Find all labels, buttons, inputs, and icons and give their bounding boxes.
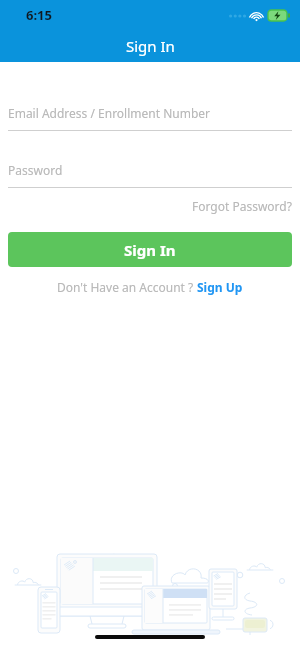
staticText: 6:15 bbox=[26, 6, 52, 24]
staticText: Sign Up bbox=[197, 279, 243, 295]
staticText: Email Address / Enrollment Number bbox=[8, 105, 211, 121]
button[interactable]: Forgot Password? bbox=[0, 198, 292, 214]
staticText: Sign In bbox=[126, 36, 175, 56]
staticText: Don't Have an Account ? bbox=[57, 279, 197, 295]
button[interactable]: Sign In bbox=[8, 232, 292, 267]
staticText: Forgot Password? bbox=[192, 198, 292, 214]
button[interactable]: Sign Up bbox=[197, 279, 243, 295]
staticText: Password bbox=[8, 162, 63, 178]
staticText: Sign In bbox=[124, 240, 176, 260]
